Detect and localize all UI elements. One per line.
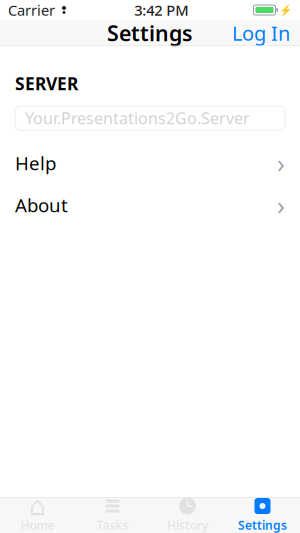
staticText: Your.Presentations2Go.Server — [25, 107, 250, 129]
staticText: SERVER — [15, 72, 78, 95]
staticText: › — [277, 146, 285, 180]
button[interactable]: Log In — [222, 14, 300, 52]
staticText: Tasks — [96, 517, 128, 533]
staticText: ⌂ — [29, 491, 46, 521]
button[interactable]: About — [0, 184, 300, 226]
button[interactable]: History — [150, 497, 225, 533]
staticText: Log In — [232, 20, 290, 46]
staticText: History — [167, 517, 208, 533]
staticText: Settings — [107, 19, 193, 47]
staticText: Help — [15, 151, 56, 175]
button[interactable]: Settings — [225, 497, 300, 533]
staticText: Home — [20, 517, 54, 533]
staticText: About — [15, 193, 68, 217]
button[interactable]: Help — [0, 142, 300, 184]
button[interactable]: Your.Presentations2Go.Server — [15, 106, 285, 130]
button[interactable]: Tasks — [75, 497, 150, 533]
staticText: 3:42 PM — [134, 0, 188, 20]
staticText: ⚡ — [279, 4, 292, 16]
staticText: › — [277, 188, 285, 222]
staticText: Carrier — [8, 0, 55, 20]
staticText: Settings — [238, 517, 287, 533]
button[interactable]: ⌂ — [0, 497, 75, 533]
